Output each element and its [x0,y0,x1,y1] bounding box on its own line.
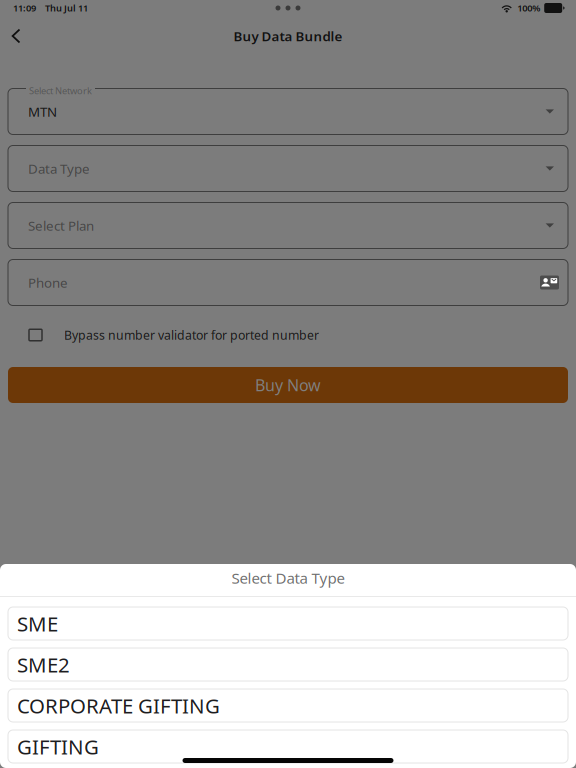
button[interactable]: Phone [8,255,568,304]
staticText: Phone [28,274,68,291]
staticText: SME [17,610,58,637]
staticText: GIFTING [17,733,99,760]
staticText: CORPORATE GIFTING [17,692,220,719]
button[interactable]: Bypass number validator for ported numbe… [0,321,576,349]
button[interactable]: SME [8,607,568,640]
button[interactable]: SME2 [8,648,568,681]
staticText: 100% [517,2,540,14]
staticText: 11:09 [13,2,36,14]
button[interactable]: Buy Now [8,367,568,403]
button[interactable]: MTN [8,84,568,133]
button[interactable]: Select Plan [8,198,568,247]
button[interactable]: Back [0,21,32,51]
button[interactable]: CORPORATE GIFTING [8,689,568,722]
staticText: Select Network [29,84,92,97]
staticText: Buy Now [255,374,321,396]
staticText: Bypass number validator for ported numbe… [64,327,319,343]
staticText: Data Type [28,160,90,177]
staticText: MTN [28,103,57,120]
staticText: SME2 [17,651,70,678]
staticText: Thu Jul 11 [45,2,88,14]
staticText: Select Plan [28,217,94,234]
button[interactable]: GIFTING [8,730,568,763]
staticText: Buy Data Bundle [233,27,342,45]
button[interactable]: Data Type [8,141,568,190]
staticText: Select Data Type [231,568,344,588]
